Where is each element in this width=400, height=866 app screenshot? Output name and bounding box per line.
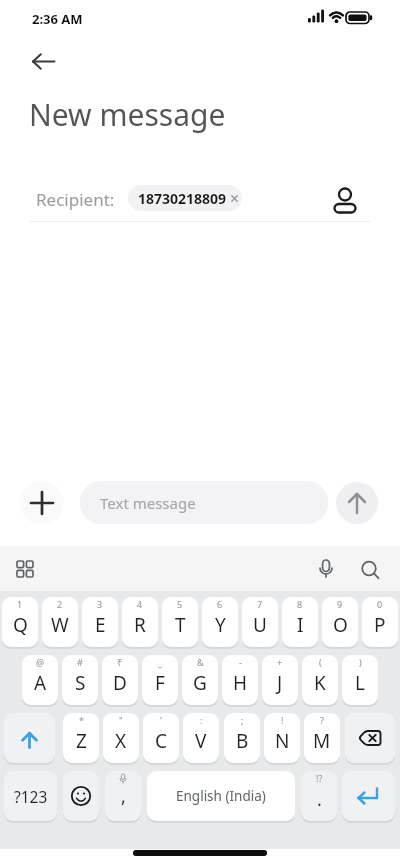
button[interactable] xyxy=(20,481,64,525)
staticText: O xyxy=(333,612,348,638)
button[interactable] xyxy=(342,771,395,821)
staticText: T xyxy=(175,612,186,638)
staticText: 3 xyxy=(97,598,103,610)
staticText: " xyxy=(119,714,123,726)
staticText: R xyxy=(134,612,146,638)
button[interactable]: English (India) xyxy=(147,771,295,821)
staticText: : xyxy=(200,714,203,726)
staticText: Text message xyxy=(100,493,196,513)
staticText: 2:36 AM xyxy=(32,10,83,28)
staticText: M xyxy=(313,728,331,754)
staticText: U xyxy=(253,612,267,638)
button[interactable]: + xyxy=(262,655,298,705)
staticText: G xyxy=(193,670,207,696)
button[interactable]: 5 xyxy=(162,597,198,647)
staticText: . xyxy=(317,787,322,812)
button[interactable]: 0 xyxy=(362,597,398,647)
staticText: L xyxy=(355,670,365,696)
button[interactable] xyxy=(330,183,362,217)
button[interactable]: : xyxy=(183,713,219,763)
staticText: I xyxy=(297,612,304,638)
staticText: , xyxy=(121,784,126,809)
staticText: _ xyxy=(158,656,162,668)
button[interactable]: 8 xyxy=(282,597,318,647)
button[interactable]: _ xyxy=(142,655,178,705)
staticText: * xyxy=(79,714,84,726)
button[interactable]: 6 xyxy=(202,597,238,647)
button[interactable]: @ xyxy=(22,655,58,705)
staticText: K xyxy=(314,670,326,696)
button[interactable]: ; xyxy=(224,713,260,763)
staticText: B xyxy=(236,728,249,754)
button[interactable]: , xyxy=(105,771,141,821)
staticText: ( xyxy=(319,656,322,668)
staticText: & xyxy=(197,656,204,668)
staticText: 6 xyxy=(217,598,223,610)
staticText: English (India) xyxy=(176,787,266,805)
staticText: ' xyxy=(160,714,163,726)
staticText: Recipient: xyxy=(36,188,115,211)
button[interactable]: ) xyxy=(342,655,378,705)
button[interactable]: - xyxy=(222,655,258,705)
button[interactable]: ( xyxy=(302,655,338,705)
staticText: ) xyxy=(359,656,362,668)
staticText: Y xyxy=(215,612,226,638)
staticText: - xyxy=(239,656,242,668)
staticText: C xyxy=(155,728,168,754)
button[interactable]: # xyxy=(62,655,98,705)
staticText: 4 xyxy=(137,598,143,610)
button[interactable]: Text message xyxy=(80,481,328,524)
staticText: ₹ xyxy=(117,656,123,668)
button[interactable]: ? xyxy=(304,713,340,763)
staticText: !? xyxy=(316,772,323,784)
button[interactable]: 18730218809 xyxy=(128,185,242,211)
staticText: + xyxy=(277,656,283,668)
staticText: ! xyxy=(281,714,284,726)
staticText: N xyxy=(275,728,290,754)
button[interactable]: & xyxy=(182,655,218,705)
staticText: ?123 xyxy=(14,786,48,807)
button[interactable] xyxy=(26,48,62,76)
staticText: F xyxy=(155,670,165,696)
button[interactable] xyxy=(312,554,340,582)
staticText: ; xyxy=(241,714,244,726)
button[interactable] xyxy=(345,713,395,763)
staticText: Q xyxy=(13,612,28,638)
button[interactable]: 1 xyxy=(2,597,38,647)
staticText: 7 xyxy=(257,598,263,610)
staticText: H xyxy=(233,670,248,696)
button[interactable]: 2 xyxy=(42,597,78,647)
button[interactable]: " xyxy=(103,713,139,763)
button[interactable] xyxy=(4,713,55,763)
staticText: 2 xyxy=(57,598,63,610)
button[interactable] xyxy=(63,771,99,821)
staticText: @ xyxy=(36,656,45,668)
button[interactable]: ?123 xyxy=(4,771,57,821)
staticText: 8 xyxy=(297,598,303,610)
staticText: ? xyxy=(320,714,324,726)
staticText: 0 xyxy=(377,598,383,610)
staticText: # xyxy=(77,656,83,668)
staticText: A xyxy=(34,670,47,696)
button[interactable]: ₹ xyxy=(102,655,138,705)
button[interactable]: 3 xyxy=(82,597,118,647)
button[interactable]: 7 xyxy=(242,597,278,647)
staticText: 18730218809 xyxy=(138,189,227,208)
staticText: 9 xyxy=(337,598,343,610)
staticText: V xyxy=(195,728,207,754)
staticText: S xyxy=(75,670,86,696)
button[interactable]: * xyxy=(63,713,99,763)
button[interactable] xyxy=(336,482,378,524)
staticText: X xyxy=(115,728,127,754)
button[interactable]: ' xyxy=(143,713,179,763)
button[interactable]: ! xyxy=(264,713,300,763)
staticText: New message xyxy=(29,94,226,135)
button[interactable] xyxy=(10,554,40,584)
staticText: Z xyxy=(76,728,87,754)
staticText: D xyxy=(113,670,127,696)
button[interactable]: !? xyxy=(301,771,337,821)
staticText: E xyxy=(95,612,106,638)
button[interactable]: 9 xyxy=(322,597,358,647)
button[interactable]: 4 xyxy=(122,597,158,647)
button[interactable] xyxy=(356,556,384,584)
